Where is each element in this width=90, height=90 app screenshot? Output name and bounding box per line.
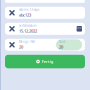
button[interactable]: Fertig [5,55,85,68]
staticText: 20 [59,44,63,50]
staticText: Menge (Stk) [19,40,35,43]
button[interactable]: verfallsdatum [5,23,85,35]
staticText: Stück [59,40,65,43]
staticText: 20 [19,44,23,50]
staticText: abc123 [19,12,31,18]
staticText: Fertig [42,59,54,64]
staticText: verfallsdatum [19,24,36,27]
staticText: 15.12.2022 [19,28,37,34]
staticText: externe Charge [19,8,40,11]
button[interactable]: Menge (Stk) [5,39,85,51]
button[interactable]: externe Charge [5,7,85,19]
